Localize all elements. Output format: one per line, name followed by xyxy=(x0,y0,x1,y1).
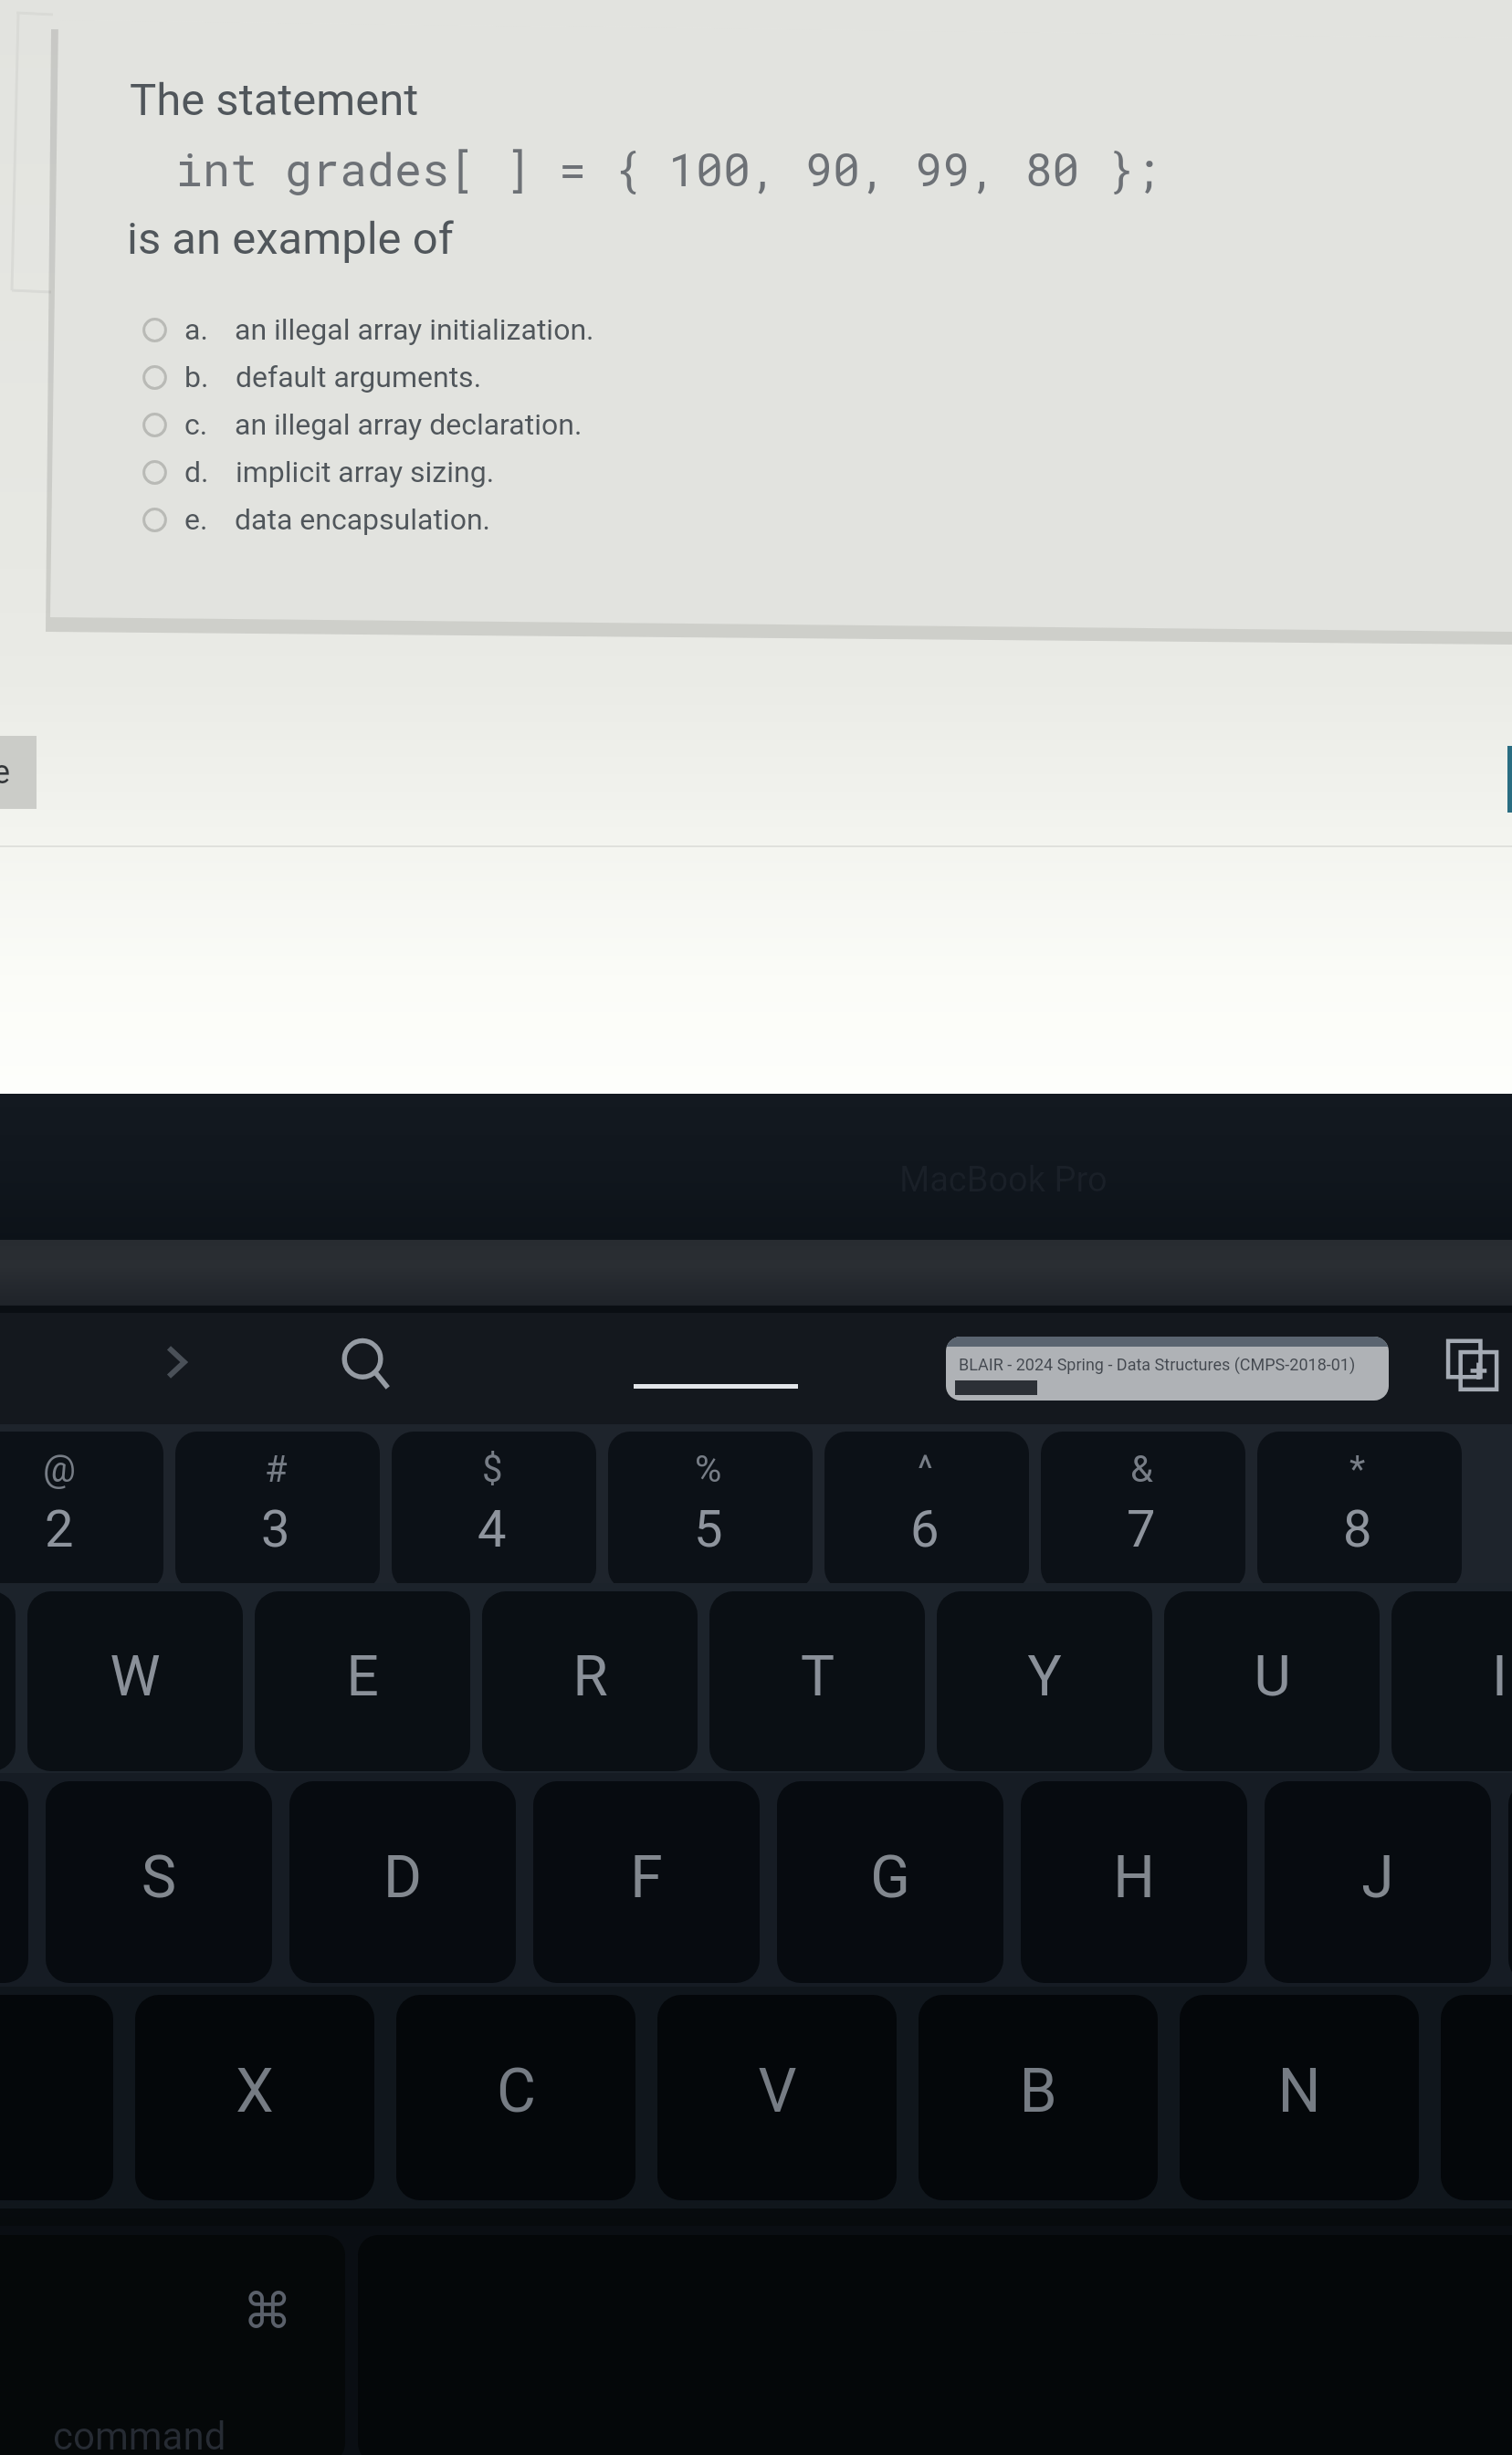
button[interactable]: Search xyxy=(336,1335,396,1395)
staticText: J xyxy=(1361,1843,1394,1912)
staticText: ⌘ xyxy=(243,2282,292,2340)
staticText: an illegal array initialization. xyxy=(235,312,594,347)
staticText: an illegal array declaration. xyxy=(235,407,583,442)
staticText: 4 xyxy=(478,1499,507,1559)
button[interactable]: D xyxy=(289,1781,516,1983)
staticText: T xyxy=(801,1642,835,1709)
button[interactable]: E xyxy=(255,1591,470,1771)
button[interactable]: Y xyxy=(937,1591,1152,1771)
staticText: S xyxy=(142,1843,176,1912)
button[interactable]: # xyxy=(175,1432,380,1590)
staticText: E xyxy=(346,1642,379,1709)
staticText: Y xyxy=(1027,1642,1062,1709)
button[interactable]: ^ xyxy=(824,1432,1029,1590)
staticText: 8 xyxy=(1343,1499,1372,1559)
staticText: BLAIR - 2024 Spring - Data Structures (C… xyxy=(959,1355,1356,1374)
button[interactable]: BLAIR - 2024 Spring - Data Structures (C… xyxy=(946,1337,1389,1401)
button[interactable]: K xyxy=(1508,1781,1512,1983)
button[interactable]: U xyxy=(1164,1591,1380,1771)
staticText: 5 xyxy=(694,1499,723,1559)
button[interactable]: & xyxy=(1041,1432,1245,1590)
button[interactable]: * xyxy=(1257,1432,1462,1590)
button[interactable]: $ xyxy=(392,1432,596,1590)
button[interactable] xyxy=(0,1781,28,1983)
button[interactable]: ⌘ xyxy=(0,2235,345,2455)
button[interactable]: d. xyxy=(142,449,782,495)
button[interactable]: W xyxy=(27,1591,243,1771)
staticText: H xyxy=(1113,1843,1155,1912)
staticText: C xyxy=(497,2056,536,2126)
staticText: 7 xyxy=(1127,1499,1156,1559)
staticText: R xyxy=(572,1642,608,1709)
staticText: * xyxy=(1349,1448,1366,1491)
staticText: 2 xyxy=(45,1499,74,1559)
staticText: 3 xyxy=(261,1499,290,1559)
staticText: D xyxy=(383,1843,422,1912)
button[interactable]: Forward xyxy=(150,1335,205,1390)
staticText: e xyxy=(0,753,11,792)
staticText: MacBook Pro xyxy=(899,1159,1108,1201)
button[interactable]: I xyxy=(1391,1591,1512,1771)
button[interactable]: e xyxy=(0,736,37,809)
button[interactable]: F xyxy=(533,1781,760,1983)
staticText: default arguments. xyxy=(236,360,482,394)
staticText: I xyxy=(1492,1642,1507,1709)
button[interactable] xyxy=(0,1591,16,1771)
staticText: b. xyxy=(184,360,209,394)
staticText: B xyxy=(1019,2056,1057,2126)
button[interactable]: J xyxy=(1265,1781,1491,1983)
staticText: G xyxy=(870,1843,910,1912)
button[interactable]: % xyxy=(608,1432,813,1590)
staticText: 6 xyxy=(910,1499,940,1559)
button[interactable]: B xyxy=(919,1995,1158,2200)
staticText: implicit array sizing. xyxy=(236,455,495,489)
button[interactable]: G xyxy=(777,1781,1003,1983)
staticText: data encapsulation. xyxy=(235,502,490,537)
staticText: @ xyxy=(43,1448,76,1491)
staticText: $ xyxy=(482,1448,503,1491)
staticText: V xyxy=(758,2056,797,2126)
staticText: & xyxy=(1130,1448,1153,1491)
button[interactable]: @ xyxy=(0,1432,163,1590)
button[interactable]: c. xyxy=(142,402,782,447)
button[interactable]: T xyxy=(709,1591,925,1771)
button[interactable]: a. xyxy=(142,307,782,352)
staticText: d. xyxy=(184,455,209,489)
staticText: N xyxy=(1277,2056,1321,2126)
staticText: a. xyxy=(184,312,208,347)
staticText: int grades[ ] = { 100, 90, 99, 80 }; xyxy=(175,139,1162,199)
button[interactable]: e. xyxy=(142,497,782,542)
staticText: X xyxy=(236,2056,274,2126)
staticText: command xyxy=(53,2414,226,2455)
staticText: % xyxy=(695,1448,722,1491)
button[interactable]: H xyxy=(1021,1781,1247,1983)
staticText: ^ xyxy=(918,1448,933,1491)
staticText: e. xyxy=(184,502,208,537)
button[interactable]: C xyxy=(396,1995,635,2200)
button[interactable]: N xyxy=(1180,1995,1419,2200)
button[interactable]: b. xyxy=(142,354,782,400)
staticText: F xyxy=(630,1843,663,1912)
staticText: The statement xyxy=(130,74,419,126)
button[interactable]: R xyxy=(482,1591,698,1771)
staticText: is an example of xyxy=(127,213,454,265)
button[interactable]: New tab xyxy=(1444,1335,1507,1397)
staticText: U xyxy=(1254,1642,1291,1709)
button[interactable]: S xyxy=(46,1781,272,1983)
staticText: c. xyxy=(184,407,208,442)
staticText: # xyxy=(265,1448,288,1491)
button[interactable]: X xyxy=(135,1995,374,2200)
button[interactable] xyxy=(0,0,1512,1094)
staticText: W xyxy=(110,1642,161,1709)
button[interactable]: V xyxy=(657,1995,897,2200)
